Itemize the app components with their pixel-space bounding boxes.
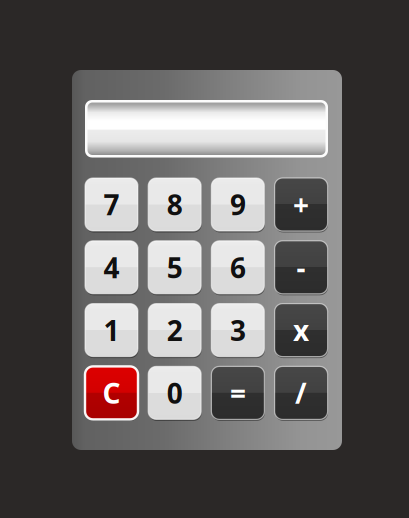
button[interactable]: +: [275, 178, 328, 231]
button[interactable]: 9: [211, 178, 264, 231]
button[interactable]: x: [275, 304, 328, 357]
staticText: 0: [167, 374, 183, 411]
staticText: 3: [230, 311, 246, 349]
button[interactable]: =: [211, 366, 264, 419]
staticText: 2: [167, 311, 183, 349]
staticText: 8: [167, 186, 183, 223]
staticText: +: [293, 186, 309, 223]
staticText: -: [297, 249, 306, 286]
staticText: 1: [103, 311, 119, 349]
button[interactable]: 2: [148, 304, 201, 357]
button[interactable]: /: [275, 366, 328, 419]
staticText: 9: [230, 186, 246, 223]
staticText: =: [230, 374, 246, 411]
button[interactable]: 0: [148, 366, 201, 419]
staticText: C: [102, 374, 120, 411]
button[interactable]: 1: [85, 304, 138, 357]
button[interactable]: C: [85, 366, 138, 419]
staticText: 5: [167, 249, 183, 286]
button[interactable]: 8: [148, 178, 201, 231]
staticText: /: [295, 374, 307, 411]
button[interactable]: 3: [211, 304, 264, 357]
staticText: 6: [230, 249, 246, 286]
button[interactable]: 7: [85, 178, 138, 231]
button[interactable]: -: [275, 241, 328, 294]
staticText: 4: [103, 249, 119, 286]
button[interactable]: 6: [211, 241, 264, 294]
button[interactable]: 5: [148, 241, 201, 294]
staticText: x: [293, 311, 309, 349]
button[interactable]: 4: [85, 241, 138, 294]
staticText: 7: [103, 186, 119, 223]
